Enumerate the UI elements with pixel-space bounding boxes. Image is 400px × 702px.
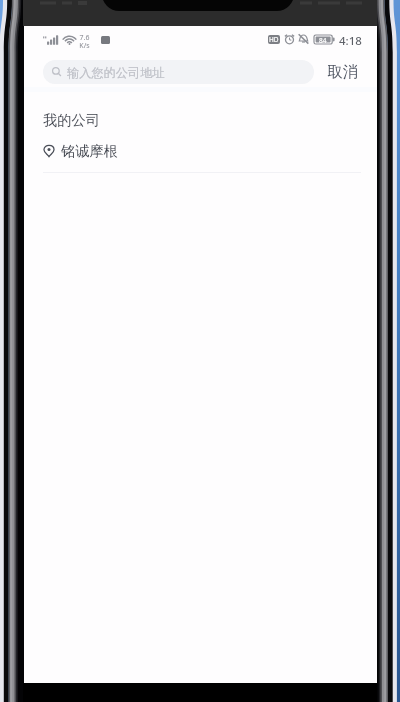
staticText: HD xyxy=(269,35,279,44)
staticText: 输入您的公司地址 xyxy=(67,65,165,80)
staticText: 取消 xyxy=(327,62,358,82)
button[interactable]: 铭诚摩根 xyxy=(24,137,377,165)
button[interactable]: 取消 xyxy=(319,56,365,87)
staticText: 我的公司 xyxy=(43,111,100,129)
staticText: 7.6 K/s xyxy=(79,33,90,50)
staticText: 铭诚摩根 xyxy=(61,142,118,160)
button[interactable]: 输入您的公司地址 xyxy=(43,60,314,84)
staticText: 84 xyxy=(319,36,327,45)
staticText: 4:18 xyxy=(339,33,362,49)
